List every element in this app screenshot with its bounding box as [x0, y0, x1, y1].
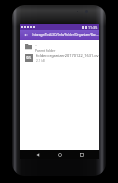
staticText: ..: [35, 42, 38, 47]
staticText: XML: [26, 56, 32, 60]
button[interactable]: ..: [20, 41, 99, 52]
button[interactable]: Recents: [77, 150, 86, 159]
staticText: 11:35: [88, 25, 98, 30]
button[interactable]: Back: [33, 150, 42, 159]
staticText: /storage/Ext4-SD/Info/Folder/Organizer/B…: [32, 33, 99, 37]
staticText: folder.organizer20170122_1631.ovd: [36, 53, 99, 58]
staticText: 2.1 kB: [36, 59, 45, 63]
button[interactable]: Home: [55, 150, 64, 159]
button[interactable]: XML: [20, 52, 99, 63]
staticText: Parent folder: [35, 48, 56, 52]
button[interactable]: Back: [20, 30, 32, 40]
